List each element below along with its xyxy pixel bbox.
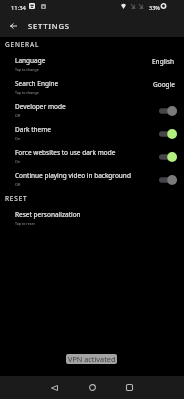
button[interactable]: Continue playing video in background (0, 168, 184, 191)
staticText: On (15, 159, 21, 164)
staticText: Language (15, 56, 46, 65)
staticText: On (15, 136, 21, 141)
button[interactable]: Back (42, 376, 66, 399)
staticText: GENERAL (5, 40, 40, 49)
staticText: Continue playing video in background (15, 171, 131, 180)
button[interactable]: Reset personalization (0, 207, 184, 230)
staticText: Tap to change (15, 90, 39, 95)
staticText: SETTINGS (28, 21, 70, 31)
button[interactable]: Dark theme (0, 122, 184, 145)
staticText: Force websites to use dark mode (15, 148, 116, 157)
button[interactable]: Language (0, 53, 184, 76)
button[interactable]: Home (80, 376, 104, 399)
staticText: RESET (5, 194, 28, 203)
staticText: Reset personalization (15, 210, 81, 219)
staticText: English (152, 57, 175, 66)
staticText: Google (153, 80, 175, 89)
button[interactable]: Recent apps (117, 376, 141, 399)
staticText: Off (15, 182, 21, 187)
button[interactable]: Back (2, 14, 24, 37)
staticText: Search Engine (15, 79, 59, 88)
staticText: Tap to reset (15, 221, 35, 226)
button[interactable]: Search Engine (0, 76, 184, 99)
staticText: Off (15, 113, 21, 118)
staticText: 11:34 (11, 4, 26, 12)
staticText: Developer mode (15, 102, 66, 111)
staticText: Tap to change (15, 67, 39, 72)
button[interactable]: Developer mode (0, 99, 184, 122)
button[interactable]: Force websites to use dark mode (0, 145, 184, 168)
staticText: VPN activated (68, 354, 116, 364)
staticText: 33% (149, 4, 160, 11)
staticText: Dark theme (15, 125, 52, 134)
